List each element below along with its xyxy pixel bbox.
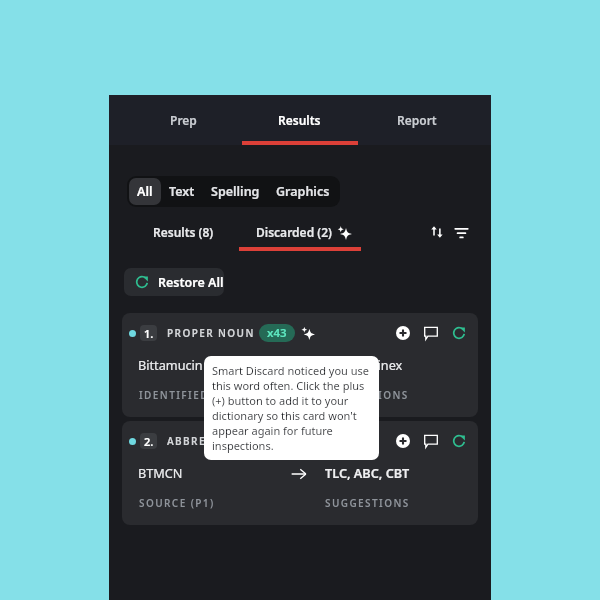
staticText: Bittamucinex bbox=[324, 356, 403, 373]
staticText: BTMCN bbox=[138, 464, 183, 481]
button[interactable]: Spelling bbox=[203, 178, 268, 205]
staticText: 2. bbox=[144, 434, 154, 449]
button[interactable]: Sort bbox=[424, 219, 450, 245]
button[interactable]: 2. bbox=[122, 421, 478, 525]
button[interactable]: All bbox=[129, 178, 161, 205]
button[interactable]: Restore All bbox=[124, 268, 224, 296]
button[interactable]: Restore bbox=[448, 322, 470, 344]
staticText: Text bbox=[169, 183, 195, 200]
button[interactable]: Add to dictionary bbox=[392, 322, 414, 344]
staticText: Results (8) bbox=[153, 224, 214, 240]
button[interactable]: Comment bbox=[420, 430, 442, 452]
staticText: SUGGESTIONS bbox=[324, 388, 409, 402]
button[interactable]: Text bbox=[161, 178, 203, 205]
staticText: Spelling bbox=[211, 183, 260, 200]
staticText: Report bbox=[397, 112, 437, 128]
staticText: x43 bbox=[267, 325, 287, 341]
button[interactable]: Filter bbox=[448, 219, 474, 245]
button[interactable]: Graphics bbox=[268, 178, 338, 205]
staticText: 1. bbox=[144, 326, 154, 341]
staticText: Smart Discard noticed you use this word … bbox=[212, 363, 373, 453]
staticText: SOURCE (P1) bbox=[139, 496, 215, 510]
staticText: Bittamucin bbox=[138, 356, 203, 373]
staticText: SUGGESTIONS bbox=[325, 496, 410, 510]
staticText: Prep bbox=[170, 112, 197, 128]
staticText: All bbox=[137, 183, 153, 200]
button[interactable]: Add to dictionary bbox=[392, 430, 414, 452]
staticText: Discarded (2) bbox=[256, 224, 332, 240]
button[interactable]: Discarded (2) bbox=[249, 217, 359, 247]
button[interactable]: Restore bbox=[448, 430, 470, 452]
button[interactable]: 1. bbox=[122, 313, 478, 417]
button[interactable]: Comment bbox=[420, 322, 442, 344]
staticText: Restore All bbox=[158, 274, 224, 291]
staticText: ABBREVIATION bbox=[167, 434, 257, 448]
button[interactable]: Results bbox=[241, 95, 358, 145]
staticText: Results bbox=[278, 112, 321, 128]
button[interactable]: Results (8) bbox=[146, 217, 221, 247]
staticText: TLC, ABC, CBT bbox=[325, 464, 410, 481]
staticText: IDENTIFIED bbox=[139, 388, 209, 402]
button[interactable]: Report bbox=[358, 95, 475, 145]
button[interactable]: Prep bbox=[125, 95, 241, 145]
staticText: PROPER NOUN bbox=[167, 326, 255, 340]
staticText: Graphics bbox=[276, 183, 330, 200]
